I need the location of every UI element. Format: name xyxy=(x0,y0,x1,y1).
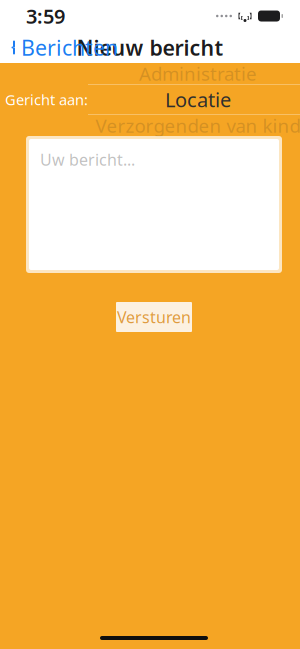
staticText: Versturen xyxy=(117,306,191,328)
staticText: Berichten xyxy=(21,33,118,62)
staticText: Gericht aan: xyxy=(5,90,88,109)
button[interactable]: Versturen xyxy=(116,302,192,332)
staticText: Uw bericht... xyxy=(40,149,135,170)
staticText: Nieuw bericht xyxy=(76,33,223,62)
staticText: Locatie xyxy=(165,86,231,113)
button[interactable]: Uw bericht xyxy=(26,136,282,273)
button[interactable]: Berichten xyxy=(0,28,124,67)
staticText: 3:59 xyxy=(26,3,65,29)
button[interactable]: Gericht aan, Locatie xyxy=(88,63,300,136)
staticText: Verzorgenden van kind xyxy=(95,113,300,138)
staticText: Administratie xyxy=(139,61,257,86)
